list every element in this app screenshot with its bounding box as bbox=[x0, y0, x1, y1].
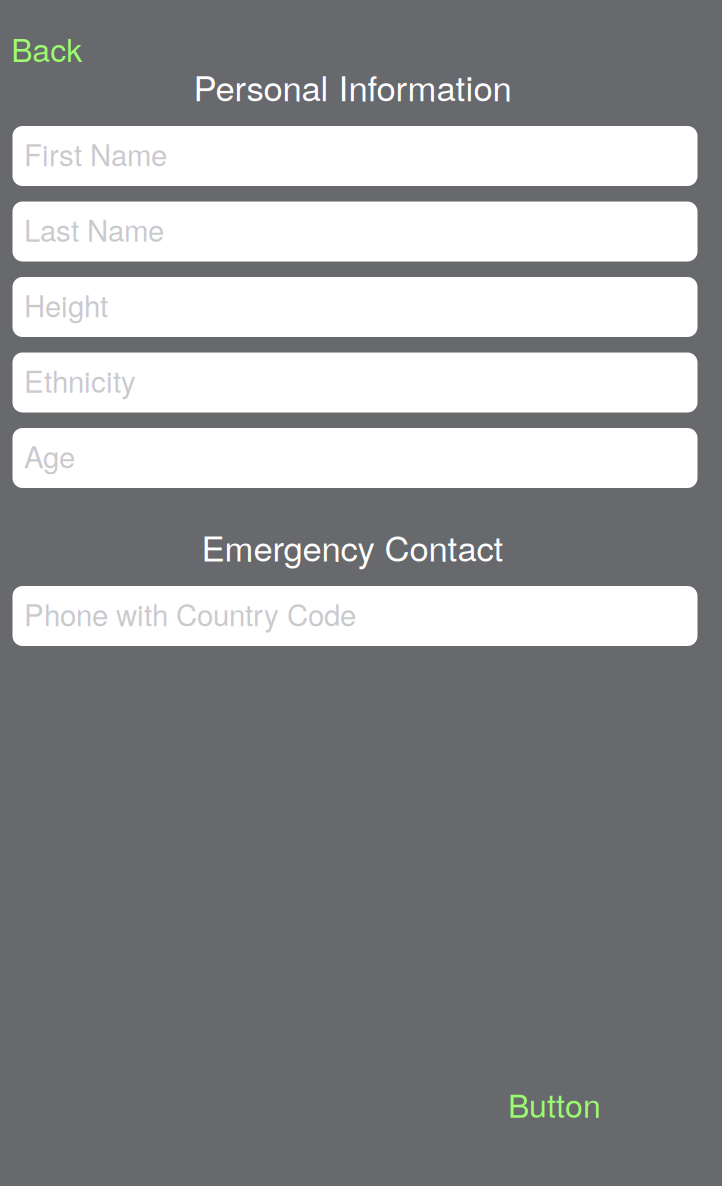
staticText: Age bbox=[24, 435, 75, 477]
button[interactable]: Ethnicity bbox=[12, 352, 697, 412]
staticText: Phone with Country Code bbox=[24, 593, 356, 635]
staticText: Emergency Contact bbox=[201, 522, 503, 571]
staticText: Button bbox=[508, 1081, 601, 1127]
staticText: Personal Information bbox=[193, 61, 511, 111]
button[interactable]: First Name bbox=[12, 126, 697, 186]
staticText: Last Name bbox=[24, 208, 164, 250]
button[interactable]: Last Name bbox=[12, 201, 697, 261]
button[interactable]: Phone with Country Code bbox=[12, 586, 697, 646]
button[interactable]: Height bbox=[12, 277, 697, 337]
button[interactable]: Age bbox=[12, 428, 697, 488]
staticText: Ethnicity bbox=[24, 359, 136, 401]
button[interactable]: Back bbox=[11, 25, 82, 71]
staticText: Back bbox=[11, 25, 82, 71]
button[interactable]: Button bbox=[508, 1081, 601, 1127]
staticText: Height bbox=[24, 284, 108, 326]
staticText: First Name bbox=[24, 133, 167, 175]
